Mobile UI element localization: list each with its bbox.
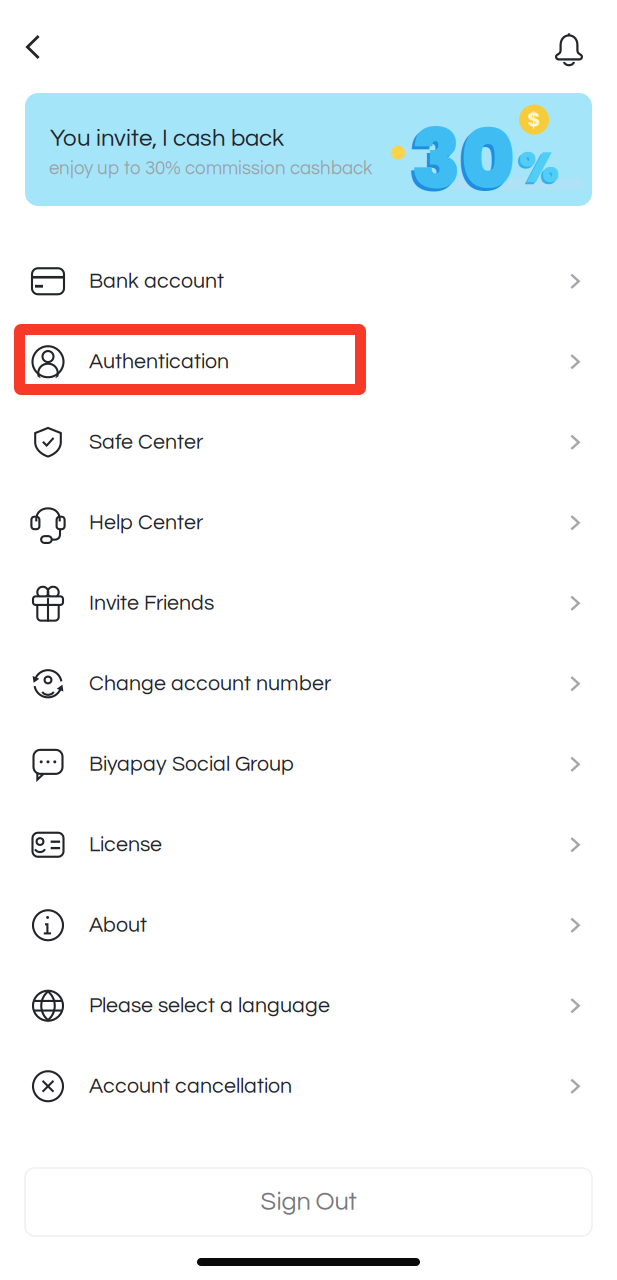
staticText: Bank account xyxy=(89,270,224,292)
button[interactable]: Change account number xyxy=(0,643,617,724)
staticText: 30 xyxy=(408,106,512,219)
staticText: You invite, I cash back xyxy=(50,126,284,151)
button[interactable]: Bank account xyxy=(0,241,617,321)
button[interactable]: Please select a language xyxy=(0,965,617,1046)
button[interactable]: Help Center xyxy=(0,482,617,563)
staticText: Change account number xyxy=(89,673,331,695)
button[interactable]: Notifications xyxy=(546,26,592,72)
button[interactable]: Biyapay Social Group xyxy=(0,724,617,804)
button[interactable]: You invite, I cash back xyxy=(25,93,592,206)
staticText: Please select a language xyxy=(89,995,330,1017)
button[interactable]: Safe Center xyxy=(0,402,617,482)
button[interactable]: License xyxy=(0,804,617,885)
staticText: Biyapay Social Group xyxy=(89,753,294,775)
button[interactable]: About xyxy=(0,885,617,965)
staticText: Account cancellation xyxy=(89,1075,292,1097)
staticText: Authentication xyxy=(89,351,229,373)
staticText: Invite Friends xyxy=(89,592,214,614)
staticText: Safe Center xyxy=(89,431,203,453)
staticText: About xyxy=(89,914,147,936)
staticText: Help Center xyxy=(89,512,203,534)
button[interactable]: Back xyxy=(10,24,56,70)
button[interactable]: Authentication xyxy=(0,321,617,402)
staticText: Sign Out xyxy=(260,1189,356,1215)
staticText: 30 xyxy=(411,103,515,216)
button[interactable]: Account cancellation xyxy=(0,1046,617,1126)
staticText: % xyxy=(517,140,557,199)
button[interactable]: Invite Friends xyxy=(0,563,617,643)
staticText: License xyxy=(89,834,162,856)
staticText: $ xyxy=(527,106,540,134)
staticText: enjoy up to 30% commission cashback xyxy=(49,159,372,178)
staticText: % xyxy=(519,138,559,197)
button[interactable]: Sign Out xyxy=(25,1168,592,1236)
